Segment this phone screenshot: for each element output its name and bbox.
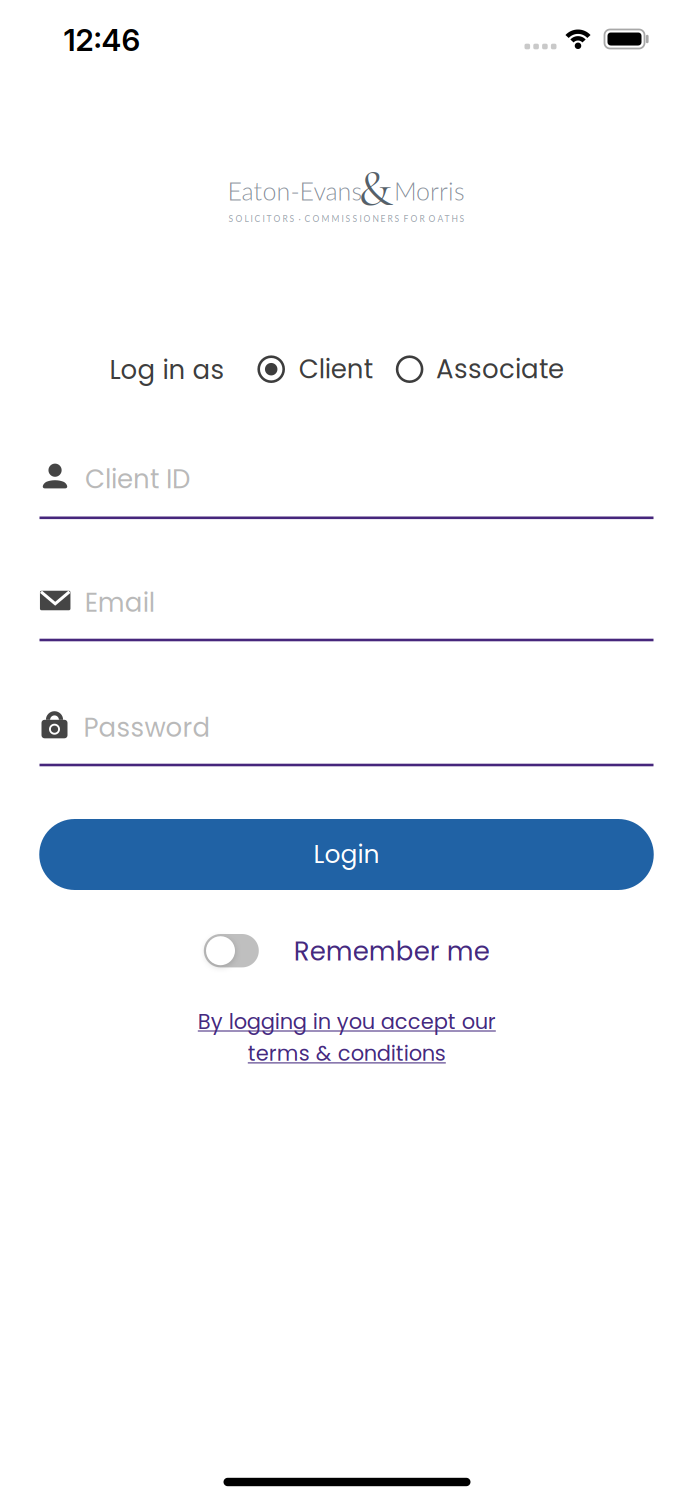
- staticText: Eaton-Evans: [227, 176, 362, 206]
- staticText: &: [358, 159, 393, 219]
- button[interactable]: Login: [39, 819, 654, 890]
- button[interactable]: Client: [259, 351, 373, 387]
- staticText: Remember me: [294, 933, 490, 970]
- staticText: S O L I C I T O R S · C O M M I S S I O …: [228, 214, 464, 224]
- staticText: 12:46: [63, 22, 140, 58]
- button[interactable]: Password: [39, 686, 653, 766]
- button[interactable]: Client ID: [39, 439, 653, 519]
- staticText: terms & conditions: [248, 1039, 446, 1068]
- staticText: Email: [85, 584, 155, 621]
- staticText: By logging in you accept our: [198, 1007, 496, 1036]
- staticText: Log in as: [109, 352, 224, 388]
- staticText: Password: [83, 709, 210, 746]
- button[interactable]: Remember me: [204, 931, 489, 971]
- button[interactable]: By logging in you accept our: [198, 1007, 496, 1068]
- button[interactable]: Associate: [397, 351, 564, 387]
- staticText: Morris: [394, 176, 465, 206]
- staticText: Client ID: [85, 461, 190, 497]
- staticText: Client: [299, 351, 373, 387]
- button[interactable]: Email: [39, 561, 653, 641]
- staticText: Login: [313, 837, 379, 872]
- staticText: Associate: [436, 351, 564, 387]
